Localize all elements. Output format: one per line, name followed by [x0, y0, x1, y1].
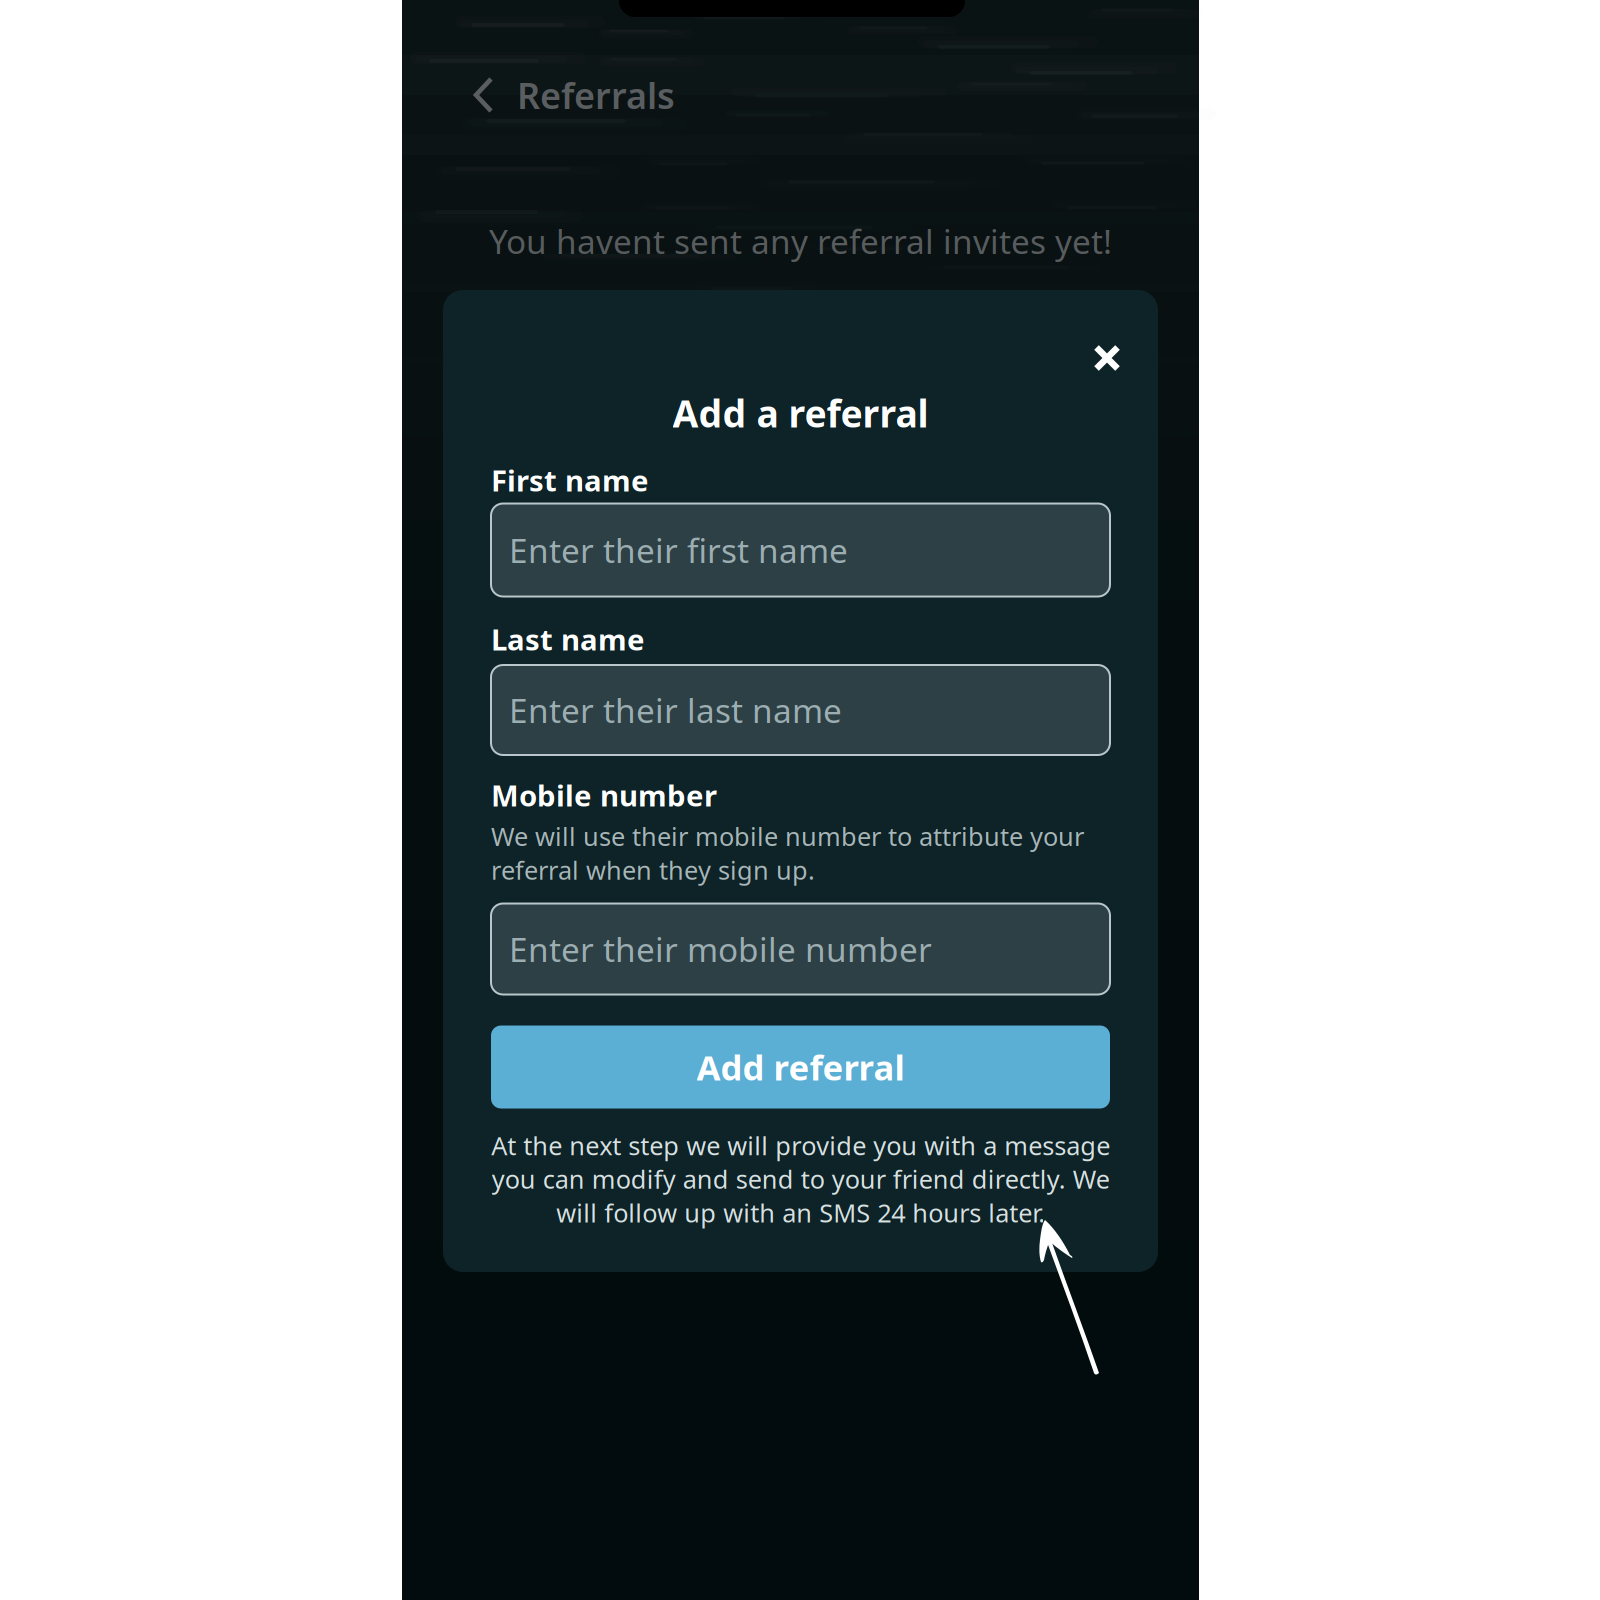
staticText: Add a referral — [672, 388, 928, 438]
button[interactable]: Enter their first name — [491, 503, 1110, 596]
button[interactable]: Back to Referrals — [473, 63, 773, 127]
staticText: Enter their first name — [509, 528, 848, 572]
staticText: Last name — [491, 619, 645, 658]
staticText: Referrals — [517, 71, 675, 119]
staticText: First name — [491, 460, 649, 499]
staticText: At the next step we will provide you wit… — [491, 1128, 1110, 1229]
staticText: Mobile number — [491, 775, 717, 814]
button[interactable]: Enter their mobile number — [491, 903, 1110, 994]
button[interactable]: Add referral — [491, 1025, 1110, 1108]
staticText: You havent sent any referral invites yet… — [489, 219, 1112, 263]
button[interactable]: Enter their last name — [491, 665, 1110, 755]
staticText: Enter their mobile number — [509, 927, 932, 971]
staticText: Add referral — [696, 1044, 904, 1090]
staticText: We will use their mobile number to attri… — [491, 819, 1084, 887]
staticText: Enter their last name — [509, 688, 842, 732]
button[interactable]: Close — [1076, 327, 1138, 389]
